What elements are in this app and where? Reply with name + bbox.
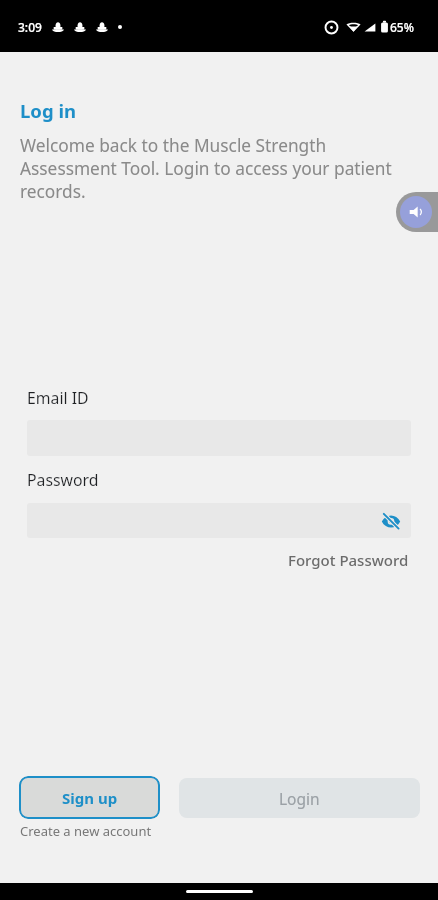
staticText: Password <box>27 469 99 491</box>
button[interactable]: Login <box>179 778 420 818</box>
button[interactable]: Toggle password visibility <box>379 509 403 533</box>
staticText: Create a new account <box>20 822 152 840</box>
button[interactable]: Accessibility <box>396 192 438 232</box>
staticText: Forgot Password <box>288 550 409 570</box>
staticText: 65% <box>390 19 414 35</box>
staticText: 3:09 <box>18 19 42 35</box>
button[interactable]: Forgot Password <box>285 548 411 572</box>
staticText: Email ID <box>27 387 89 409</box>
staticText: Log in <box>20 98 76 123</box>
staticText: Login <box>279 788 320 809</box>
staticText: Sign up <box>62 788 118 808</box>
button[interactable]: Create a new account <box>20 821 156 841</box>
button[interactable]: Sign up <box>19 776 160 819</box>
staticText: Welcome back to the Muscle Strength Asse… <box>20 134 410 203</box>
button[interactable]: Toggle password visibility <box>27 503 411 538</box>
